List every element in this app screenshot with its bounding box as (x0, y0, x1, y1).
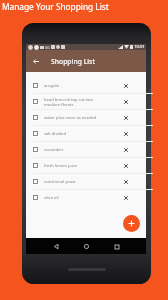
button[interactable]: salt divided (26, 126, 146, 141)
button[interactable]: Remove head broccoli top cut into medium… (120, 96, 132, 108)
staticText: olive oil (44, 195, 120, 201)
staticText: 10:01 (134, 44, 145, 50)
button[interactable]: Recents (111, 241, 122, 252)
staticText: fresh lemon juice (44, 163, 120, 169)
button[interactable]: Back (30, 56, 41, 67)
staticText: Shopping List (51, 57, 96, 66)
staticText: head broccoli top cut into medium floret… (44, 97, 120, 107)
button[interactable]: arugula (26, 78, 146, 93)
staticText: arugula (44, 83, 120, 89)
staticText: Manage Your Shopping List (2, 1, 109, 12)
button[interactable]: Remove cucumber (120, 144, 132, 156)
button[interactable]: cucumber (26, 142, 146, 157)
staticText: water plus more as needed (44, 115, 120, 121)
button[interactable]: Remove fresh lemon juice (120, 160, 132, 172)
button[interactable]: Remove nutritional yeast (120, 176, 132, 188)
staticText: cucumber (44, 147, 120, 153)
staticText: nutritional yeast (44, 179, 120, 185)
button[interactable]: olive oil (26, 190, 146, 205)
button[interactable]: Back (50, 241, 61, 252)
button[interactable]: Remove water plus more as needed (120, 112, 132, 124)
button[interactable]: Remove salt divided (120, 128, 132, 140)
button[interactable]: nutritional yeast (26, 174, 146, 189)
button[interactable]: Add item (123, 215, 140, 232)
button[interactable]: Remove olive oil (120, 192, 132, 204)
button[interactable]: Home (81, 241, 92, 252)
staticText: 6G (45, 45, 50, 50)
button[interactable]: Remove arugula (120, 80, 132, 92)
button[interactable]: head broccoli top cut into medium floret… (26, 94, 146, 109)
button[interactable]: water plus more as needed (26, 110, 146, 125)
staticText: salt divided (44, 131, 120, 137)
button[interactable]: fresh lemon juice (26, 158, 146, 173)
